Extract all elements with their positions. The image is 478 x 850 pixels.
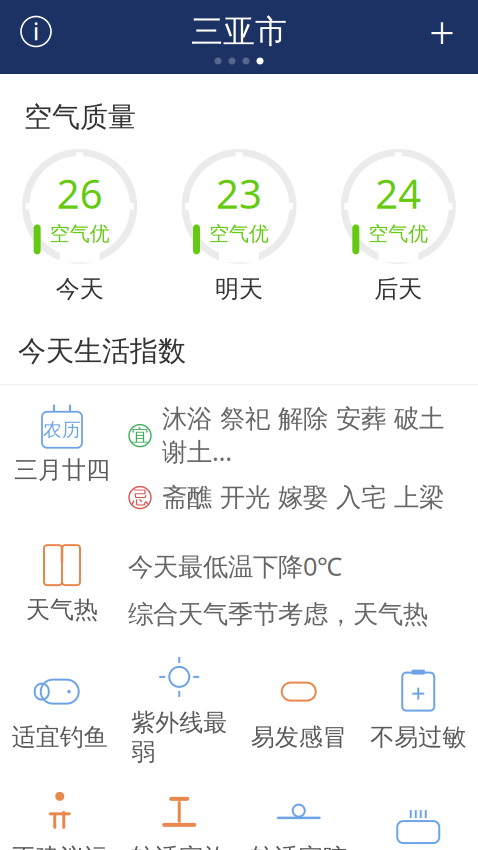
- staticText: 26: [57, 166, 103, 220]
- staticText: 斋醮 开光 嫁娶 入宅 上梁: [162, 482, 444, 513]
- button[interactable]: 适宜钓鱼: [0, 665, 119, 756]
- staticText: 23: [216, 166, 262, 220]
- staticText: 综合天气季节考虑，天气热: [128, 599, 428, 630]
- staticText: 空气质量: [24, 100, 136, 134]
- button[interactable]: 26: [0, 148, 159, 304]
- staticText: 三月廿四: [14, 455, 110, 485]
- button[interactable]: 不易过敏: [358, 665, 478, 756]
- staticText: 不建议运动: [12, 843, 108, 850]
- staticText: 宜: [131, 425, 148, 446]
- staticText: 适宜钓鱼: [12, 723, 108, 752]
- staticText: 今天最低温下降0℃: [128, 549, 342, 583]
- staticText: 今天生活指数: [18, 334, 186, 368]
- staticText: 天气热: [26, 595, 98, 625]
- staticText: i: [33, 16, 39, 46]
- staticText: 空气优: [368, 222, 428, 246]
- staticText: 不易过敏: [370, 723, 466, 752]
- staticText: 忌: [131, 487, 148, 508]
- staticText: 明天: [215, 274, 263, 304]
- staticText: 易发感冒: [251, 723, 347, 752]
- staticText: 空气优: [209, 222, 269, 246]
- button[interactable]: 不建议运动: [0, 785, 119, 850]
- button[interactable]: 适宜洗车: [358, 800, 478, 850]
- button[interactable]: 易发感冒: [239, 665, 358, 756]
- staticText: 后天: [374, 274, 422, 304]
- staticText: +: [429, 1, 455, 62]
- staticText: 空气优: [50, 222, 110, 246]
- button[interactable]: 较适宜旅游: [119, 785, 239, 850]
- staticText: 农历: [43, 418, 81, 441]
- button[interactable]: 23: [159, 148, 319, 304]
- staticText: 今天: [56, 274, 104, 304]
- button[interactable]: 天气热: [0, 529, 478, 644]
- button[interactable]: 紫外线最弱: [119, 650, 239, 771]
- staticText: 三亚市: [191, 12, 287, 51]
- staticText: 24: [375, 166, 421, 220]
- button[interactable]: 农历: [0, 385, 478, 529]
- button[interactable]: Info: [10, 9, 62, 53]
- button[interactable]: 24: [319, 148, 478, 304]
- button[interactable]: 较适宜晾晒: [239, 785, 358, 850]
- staticText: 较适宜旅游: [131, 843, 227, 850]
- button[interactable]: Add city: [416, 9, 468, 53]
- staticText: 较适宜晾晒: [251, 843, 347, 850]
- staticText: 沐浴 祭祀 解除 安葬 破土 谢土…: [162, 403, 444, 468]
- staticText: 紫外线最弱: [131, 708, 227, 767]
